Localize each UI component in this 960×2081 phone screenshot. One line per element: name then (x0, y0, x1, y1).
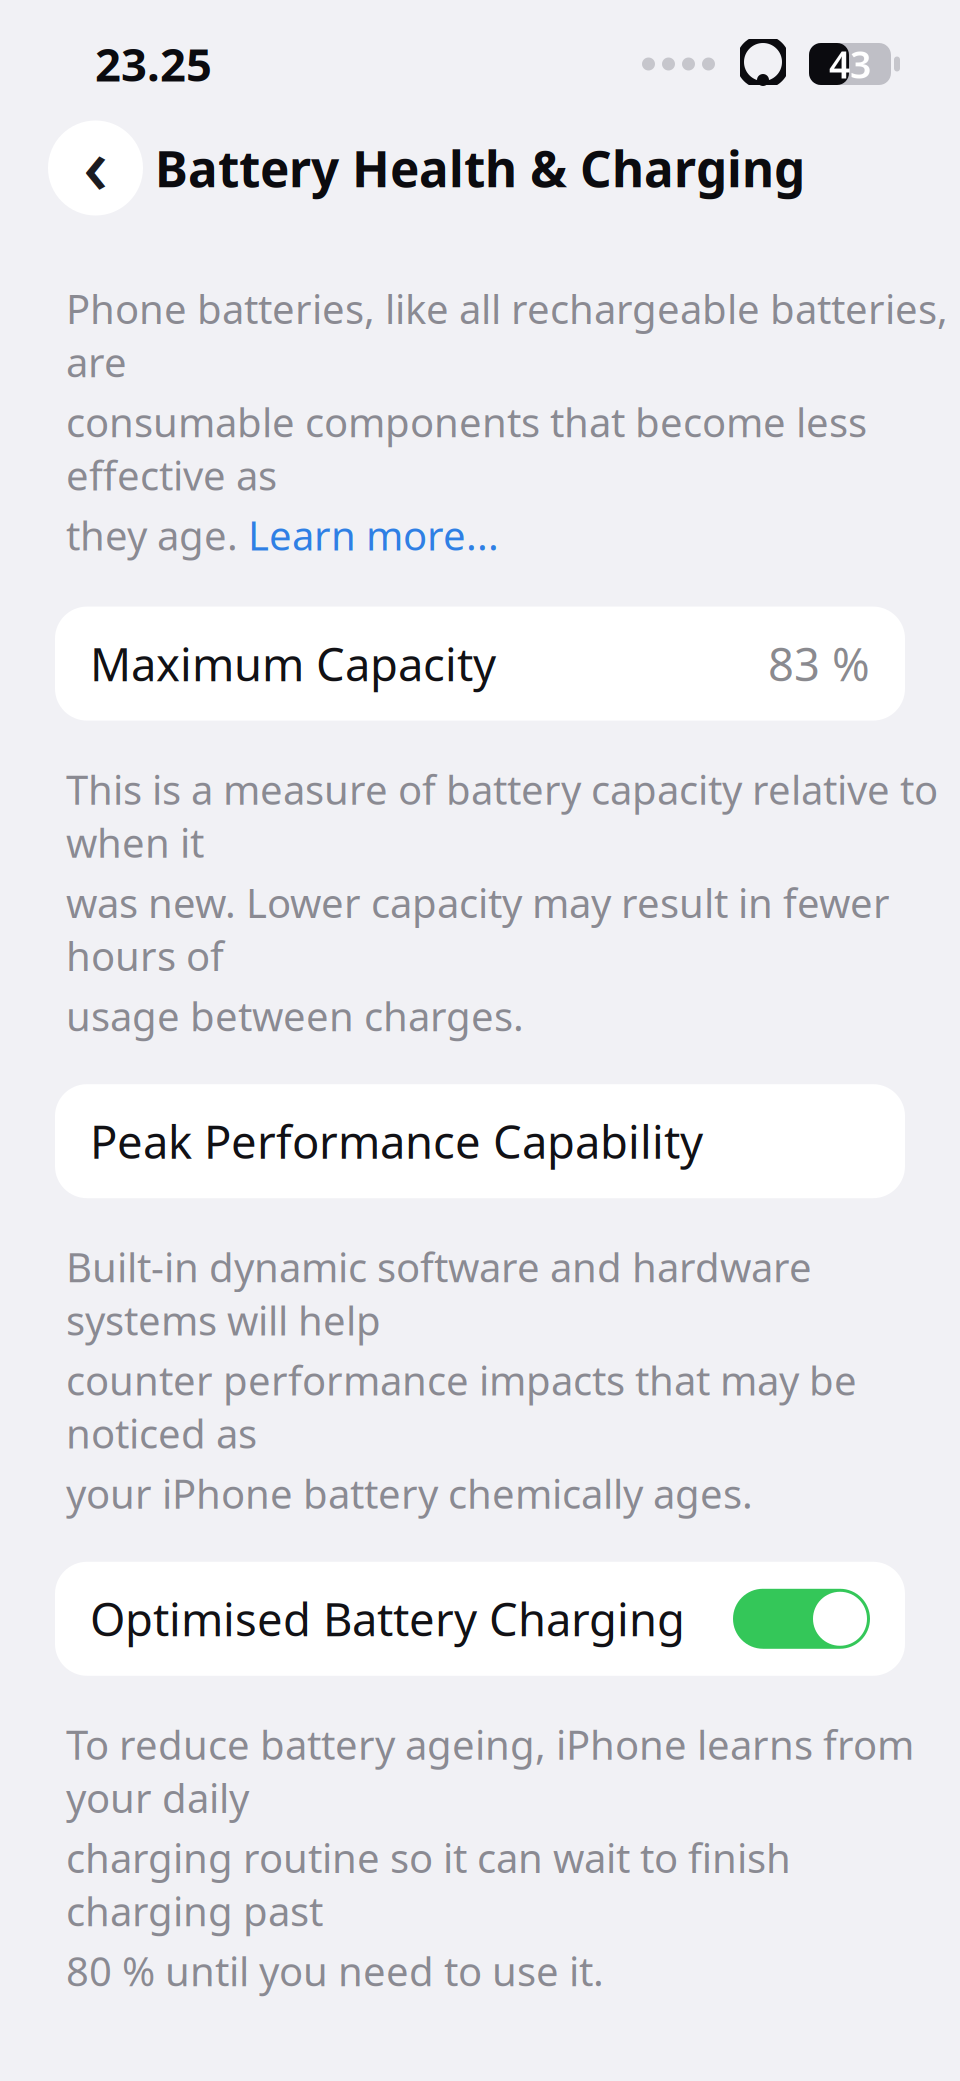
staticText: This is a measure of battery capacity re… (66, 763, 938, 869)
staticText: Phone batteries, like all rechargeable b… (66, 282, 948, 388)
button[interactable]: Optimised Battery Charging (55, 1562, 905, 1676)
button[interactable]: Learn more... (248, 508, 499, 562)
staticText: charging routine so it can wait to finis… (66, 1831, 791, 1937)
staticText: Built-in dynamic software and hardware s… (66, 1240, 812, 1346)
staticText: Learn more... (248, 508, 499, 562)
staticText: To reduce battery ageing, iPhone learns … (66, 1718, 914, 1824)
staticText: 80 % until you need to use it. (66, 1944, 604, 1997)
button[interactable]: Maximum Capacity (55, 607, 905, 721)
staticText: consumable components that become less e… (66, 395, 867, 501)
staticText: Optimised Battery Charging (90, 1589, 685, 1649)
staticText: they age. (66, 508, 248, 562)
staticText: usage between charges. (66, 989, 524, 1042)
staticText: ‹ (83, 113, 108, 215)
button[interactable]: Back (48, 120, 143, 215)
button[interactable]: Peak Performance Capability (55, 1084, 905, 1198)
staticText: 83 % (768, 633, 870, 694)
staticText: Battery Health & Charging (155, 135, 805, 201)
staticText: your iPhone battery chemically ages. (66, 1467, 753, 1520)
staticText: 43 (829, 39, 871, 89)
staticText: Maximum Capacity (90, 633, 496, 694)
staticText: 23.25 (95, 34, 212, 94)
staticText: Peak Performance Capability (90, 1111, 703, 1171)
staticText: was new. Lower capacity may result in fe… (66, 876, 890, 982)
staticText: counter performance impacts that may be … (66, 1353, 857, 1460)
